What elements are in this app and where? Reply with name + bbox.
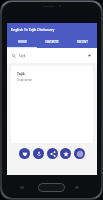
button[interactable]: Rate app bbox=[60, 148, 71, 159]
button[interactable]: Clear bbox=[87, 53, 92, 58]
button[interactable]: Search bbox=[12, 54, 16, 58]
button[interactable]: Favorite bbox=[19, 148, 30, 159]
button[interactable]: Pronounce bbox=[33, 148, 44, 159]
staticText: Тоҷикистон bbox=[17, 78, 33, 82]
staticText: RECENT bbox=[77, 40, 88, 44]
staticText: Tajik bbox=[17, 71, 25, 76]
staticText: WORD bbox=[18, 40, 27, 44]
button[interactable]: WORD bbox=[7, 35, 37, 48]
button[interactable]: Tajik bbox=[11, 66, 93, 143]
staticText: Tajik bbox=[19, 54, 26, 58]
staticText: English To Tajik Dictionary bbox=[11, 27, 55, 32]
button[interactable]: FAVORITE bbox=[37, 35, 67, 48]
button[interactable]: Home bbox=[38, 183, 65, 192]
button[interactable]: Share bbox=[47, 148, 58, 159]
button[interactable]: RECENT bbox=[67, 35, 97, 48]
staticText: FAVORITE bbox=[45, 40, 59, 44]
button[interactable]: More apps bbox=[74, 148, 85, 159]
